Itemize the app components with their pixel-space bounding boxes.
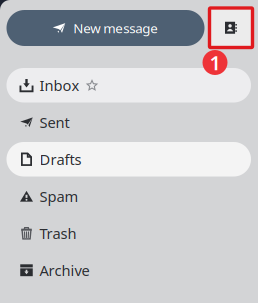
button[interactable]: Inbox [6, 68, 251, 102]
staticText: Drafts [39, 149, 81, 169]
staticText: Archive [39, 260, 89, 280]
button[interactable]: Spam [6, 179, 251, 213]
staticText: New message [73, 19, 158, 37]
staticText: Trash [39, 223, 76, 243]
button[interactable]: New message [6, 10, 204, 46]
staticText: Sent [39, 112, 69, 132]
button[interactable]: Sent [6, 105, 251, 139]
button[interactable]: Drafts [6, 142, 251, 176]
button[interactable]: Archive [6, 253, 251, 287]
button[interactable]: Contacts [209, 8, 252, 47]
staticText: 1 [209, 49, 220, 76]
staticText: Inbox [39, 75, 79, 95]
button[interactable]: Trash [6, 216, 251, 250]
staticText: Spam [39, 186, 78, 206]
